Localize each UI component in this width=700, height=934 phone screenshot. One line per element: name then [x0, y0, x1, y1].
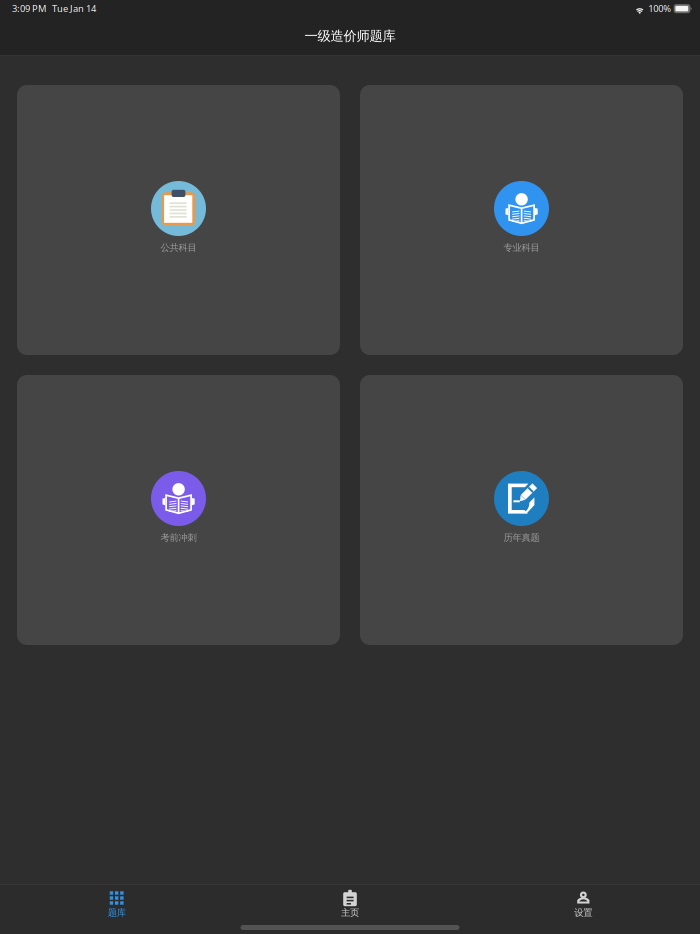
staticText: 专业科目 — [503, 242, 539, 253]
button[interactable]: 历年真题 — [360, 375, 683, 645]
staticText: Tue Jan 14 — [52, 2, 96, 15]
staticText: 公共科目 — [160, 242, 196, 253]
button[interactable]: 专业科目 — [360, 85, 683, 355]
staticText: 考前冲刺 — [160, 532, 196, 543]
staticText: 一级造价师题库 — [304, 28, 395, 44]
staticText: 历年真题 — [503, 532, 539, 543]
button[interactable]: 公共科目 — [17, 85, 340, 355]
staticText: 设置 — [574, 907, 592, 918]
staticText: 题库 — [108, 907, 126, 918]
button[interactable]: 题库 — [0, 885, 233, 921]
staticText: 3:09 PM — [12, 2, 46, 15]
button[interactable]: 设置 — [467, 885, 700, 921]
button[interactable]: 考前冲刺 — [17, 375, 340, 645]
staticText: 100% — [648, 2, 671, 15]
staticText: 主页 — [341, 907, 359, 918]
button[interactable]: 主页 — [233, 885, 467, 921]
